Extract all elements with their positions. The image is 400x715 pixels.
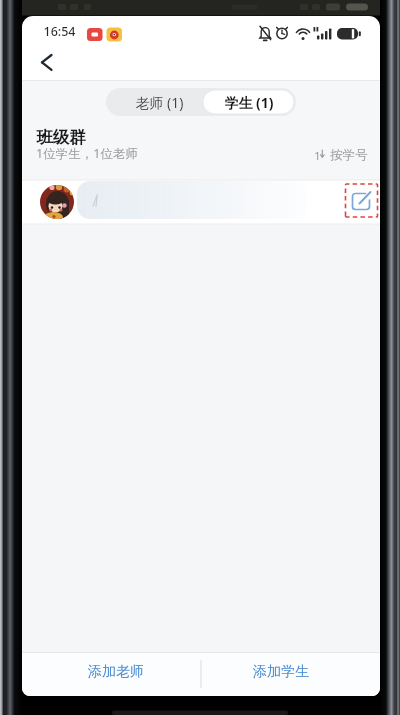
staticText: 老师 (1) [135,93,184,112]
staticText: 按学号 [330,147,368,163]
staticText: 班级群 [36,127,86,148]
staticText: 学生 (1) [224,93,274,112]
staticText: 16:54 [43,23,76,40]
staticText: 1位学生，1位老师 [36,145,138,161]
staticText: 1 [314,148,321,162]
staticText: 添加老师 [88,663,144,681]
staticText: 添加学生 [253,663,309,681]
